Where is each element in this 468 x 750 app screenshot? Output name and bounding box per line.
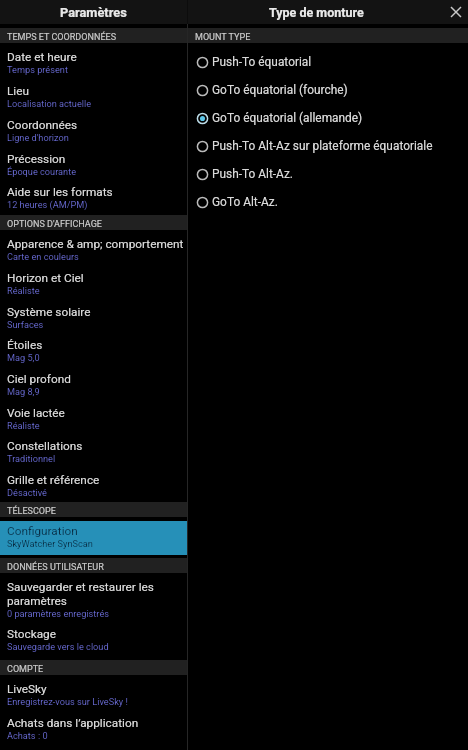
staticText: COMPTE bbox=[7, 664, 44, 675]
staticText: Voie lactée bbox=[7, 406, 65, 420]
button[interactable]: Système solaire bbox=[0, 298, 187, 331]
staticText: Achats : 0 bbox=[7, 730, 48, 741]
staticText: Ligne d'horizon bbox=[7, 132, 69, 143]
staticText: Mag 8,9 bbox=[7, 386, 40, 397]
staticText: Configuration bbox=[7, 524, 78, 538]
staticText: Constellations bbox=[7, 439, 83, 453]
staticText: Système solaire bbox=[7, 305, 91, 319]
staticText: Type de monture bbox=[269, 5, 364, 20]
staticText: Apparence & amp; comportement bbox=[7, 237, 184, 251]
staticText: Sauvegarde vers le cloud bbox=[7, 641, 109, 652]
staticText: Localisation actuelle bbox=[7, 98, 92, 109]
button[interactable]: Sauvegarder et restaurer les paramètres bbox=[0, 573, 187, 620]
button[interactable]: Coordonnées bbox=[0, 111, 187, 145]
staticText: Aide sur les formats bbox=[7, 185, 113, 199]
button[interactable]: Stockage bbox=[0, 620, 187, 654]
staticText: Push-To Alt-Az. bbox=[212, 167, 293, 181]
staticText: Date et heure bbox=[7, 50, 77, 64]
button[interactable]: Configuration bbox=[0, 517, 187, 551]
button[interactable]: Constellations bbox=[0, 432, 187, 466]
staticText: Horizon et Ciel bbox=[7, 271, 84, 285]
staticText: GoTo Alt-Az. bbox=[212, 195, 278, 209]
button[interactable]: GoTo équatorial (allemande) bbox=[188, 104, 468, 132]
button[interactable]: Push-To Alt-Az. bbox=[188, 160, 468, 188]
staticText: MOUNT TYPE bbox=[195, 32, 251, 43]
staticText: LiveSky bbox=[7, 682, 47, 696]
staticText: 0 paramètres enregistrés bbox=[7, 608, 110, 619]
staticText: Push-To équatorial bbox=[212, 55, 312, 69]
staticText: Époque courante bbox=[7, 166, 77, 177]
button[interactable]: Étoiles bbox=[0, 331, 187, 365]
button[interactable]: Ciel profond bbox=[0, 365, 187, 399]
staticText: Push-To Alt-Az sur plateforme équatorial… bbox=[212, 139, 433, 153]
staticText: Achats dans l’application bbox=[7, 716, 139, 730]
button[interactable]: GoTo équatorial (fourche) bbox=[188, 76, 468, 104]
button[interactable]: Aide sur les formats bbox=[0, 178, 187, 212]
staticText: Enregistrez-vous sur LiveSky ! bbox=[7, 696, 128, 707]
button[interactable]: Apparence & amp; comportement bbox=[0, 230, 187, 264]
button[interactable]: Push-To Alt-Az sur plateforme équatorial… bbox=[188, 132, 468, 160]
button[interactable]: GoTo Alt-Az. bbox=[188, 188, 468, 216]
button[interactable]: Date et heure bbox=[0, 43, 187, 77]
staticText: Ciel profond bbox=[7, 372, 71, 386]
button[interactable]: Précession bbox=[0, 145, 187, 178]
staticText: Précession bbox=[7, 152, 66, 166]
button[interactable]: Push-To équatorial bbox=[188, 48, 468, 76]
button[interactable]: Horizon et Ciel bbox=[0, 264, 187, 298]
staticText: GoTo équatorial (fourche) bbox=[212, 83, 348, 97]
staticText: Traditionnel bbox=[7, 453, 56, 464]
staticText: Réaliste bbox=[7, 285, 40, 296]
staticText: Lieu bbox=[7, 84, 29, 98]
staticText: Temps présent bbox=[7, 64, 68, 75]
staticText: Mag 5,0 bbox=[7, 352, 40, 363]
staticText: Coordonnées bbox=[7, 118, 78, 132]
button[interactable]: Achats dans l’application bbox=[0, 709, 187, 743]
staticText: Désactivé bbox=[7, 487, 47, 498]
staticText: OPTIONS D'AFFICHAGE bbox=[7, 219, 103, 230]
staticText: GoTo équatorial (allemande) bbox=[212, 111, 363, 125]
button[interactable]: Voie lactée bbox=[0, 399, 187, 432]
staticText: SkyWatcher SynScan bbox=[7, 538, 93, 549]
staticText: TÉLESCOPE bbox=[7, 506, 56, 517]
button[interactable]: Grille et référence bbox=[0, 466, 187, 500]
staticText: Réaliste bbox=[7, 420, 40, 431]
staticText: Grille et référence bbox=[7, 473, 100, 487]
button[interactable]: LiveSky bbox=[0, 675, 187, 709]
staticText: 12 heures (AM/PM) bbox=[7, 199, 88, 210]
button[interactable]: Close bbox=[444, 0, 468, 24]
staticText: TEMPS ET COORDONNÉES bbox=[7, 32, 117, 43]
staticText: DONNÉES UTILISATEUR bbox=[7, 562, 104, 573]
staticText: Paramètres bbox=[60, 5, 127, 20]
staticText: Étoiles bbox=[7, 338, 43, 352]
button[interactable]: Lieu bbox=[0, 77, 187, 111]
staticText: Carte en couleurs bbox=[7, 251, 79, 262]
staticText: Stockage bbox=[7, 627, 56, 641]
staticText: Surfaces bbox=[7, 319, 44, 330]
staticText: Sauvegarder et restaurer les paramètres bbox=[7, 580, 185, 608]
